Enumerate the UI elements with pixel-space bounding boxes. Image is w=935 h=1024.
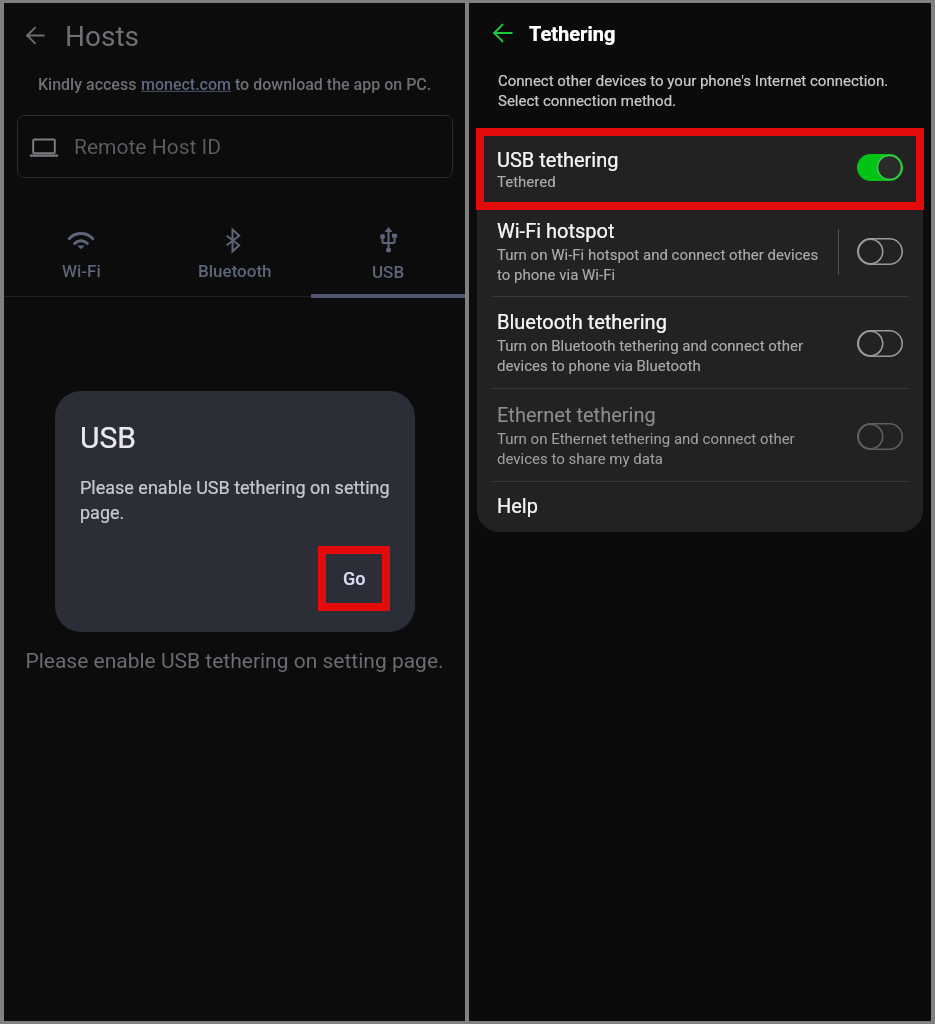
button[interactable]: Bluetooth tethering switch [849, 298, 911, 388]
button[interactable]: monect.com [141, 75, 231, 94]
button[interactable]: Help [477, 481, 923, 532]
staticText: Please enable USB tethering on setting p… [4, 649, 465, 674]
button[interactable]: Wi-Fi hotspot switch [849, 207, 911, 296]
staticText: Kindly access [38, 75, 141, 94]
button[interactable]: USB [311, 211, 465, 293]
button[interactable]: Back [487, 17, 519, 49]
staticText: Wi-Fi [62, 261, 101, 281]
staticText: Connect other devices to your phone's In… [498, 72, 898, 109]
button[interactable]: Ethernet tethering switch [849, 391, 911, 481]
button[interactable]: USB tethering switch [849, 128, 911, 207]
button[interactable]: Bluetooth tethering [477, 298, 923, 388]
staticText: Please enable USB tethering on setting p… [80, 477, 400, 523]
staticText: Help [497, 494, 538, 517]
staticText: Bluetooth tethering [497, 310, 667, 333]
staticText: USB [80, 420, 136, 455]
staticText: Turn on Ethernet tethering and connect o… [497, 430, 795, 467]
staticText: Tethering [529, 22, 616, 45]
staticText: Ethernet tethering [497, 403, 656, 426]
staticText: Tethered [497, 173, 556, 191]
staticText: Go [343, 568, 366, 589]
button[interactable]: Wi-Fi [4, 211, 158, 293]
staticText: Turn on Wi-Fi hotspot and connect other … [497, 246, 819, 283]
button[interactable]: Bluetooth [158, 211, 312, 293]
button[interactable]: USB tethering [477, 128, 923, 207]
staticText: Wi-Fi hotspot [497, 219, 615, 242]
button[interactable]: Wi-Fi hotspot [477, 207, 923, 296]
staticText: USB tethering [497, 148, 619, 171]
button[interactable]: Remote Host ID [17, 115, 453, 178]
staticText: Hosts [65, 20, 140, 53]
staticText: USB [372, 262, 405, 282]
staticText: to download the app on PC. [231, 75, 432, 94]
button[interactable]: Back [15, 15, 55, 55]
button[interactable]: Go [318, 546, 390, 611]
staticText: Bluetooth [198, 261, 272, 281]
staticText: Remote Host ID [74, 135, 222, 160]
staticText: Turn on Bluetooth tethering and connect … [497, 337, 804, 374]
button[interactable]: Ethernet tethering [477, 391, 923, 481]
